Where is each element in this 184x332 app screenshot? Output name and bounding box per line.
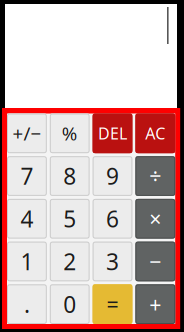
button[interactable]: −	[135, 242, 175, 281]
button[interactable]: 1	[7, 242, 47, 281]
button[interactable]: +/−	[7, 113, 47, 153]
staticText: 4	[20, 204, 33, 234]
button[interactable]: =	[93, 284, 132, 324]
button[interactable]: 8	[50, 156, 90, 196]
button[interactable]: 0	[50, 284, 90, 324]
staticText: .	[24, 289, 30, 319]
staticText: 0	[63, 289, 76, 319]
staticText: ÷	[149, 162, 161, 190]
button[interactable]: ÷	[135, 156, 175, 196]
staticText: 7	[20, 161, 33, 191]
staticText: %	[62, 121, 78, 146]
button[interactable]: .	[7, 284, 47, 324]
staticText: DEL	[98, 123, 127, 144]
button[interactable]: +	[135, 284, 175, 324]
staticText: 5	[63, 204, 76, 234]
staticText: ×	[149, 205, 161, 233]
button[interactable]: 4	[7, 199, 47, 239]
staticText: −	[149, 247, 161, 276]
staticText: 8	[63, 161, 76, 191]
button[interactable]: 3	[93, 242, 132, 281]
staticText: 1	[20, 246, 33, 276]
button[interactable]: AC	[135, 113, 175, 153]
button[interactable]: %	[50, 113, 90, 153]
staticText: +	[149, 290, 161, 318]
button[interactable]: 9	[93, 156, 132, 196]
button[interactable]: 7	[7, 156, 47, 196]
button[interactable]: 6	[93, 199, 132, 239]
staticText: +/−	[12, 121, 41, 146]
staticText: 2	[63, 246, 76, 276]
button[interactable]: 5	[50, 199, 90, 239]
staticText: AC	[145, 123, 165, 144]
button[interactable]: DEL	[93, 113, 132, 153]
staticText: =	[106, 290, 118, 318]
staticText: 6	[106, 204, 119, 234]
button[interactable]: 2	[50, 242, 90, 281]
staticText: 3	[106, 246, 119, 276]
button[interactable]: ×	[135, 199, 175, 239]
staticText: 9	[106, 161, 119, 191]
